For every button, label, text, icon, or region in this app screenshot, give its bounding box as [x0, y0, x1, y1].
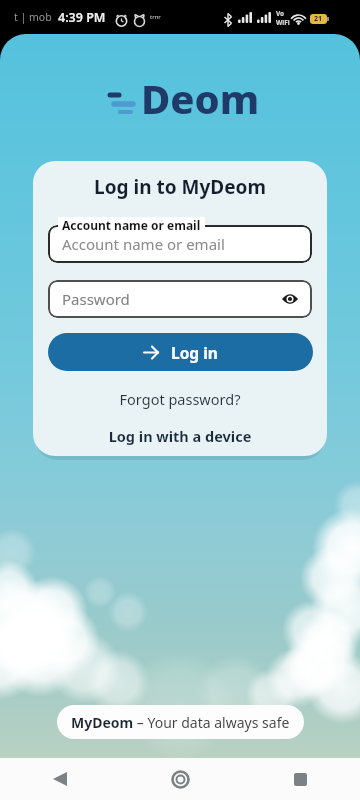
staticText: Log in: [171, 342, 218, 363]
button[interactable]: Account name or email: [48, 225, 312, 263]
staticText: Password: [62, 289, 130, 309]
button[interactable]: MyDeom – Your data always safe: [57, 705, 304, 739]
staticText: Account name or email: [62, 217, 201, 233]
button[interactable]: [120, 758, 240, 800]
staticText: Account name or email: [62, 234, 225, 254]
staticText: Vo: [276, 9, 285, 18]
button[interactable]: Log in: [48, 333, 313, 371]
staticText: trnr: [150, 13, 161, 21]
staticText: t | mob: [14, 10, 52, 24]
staticText: MyDeom – Your data always safe: [71, 713, 290, 732]
button[interactable]: [0, 758, 120, 800]
button[interactable]: Forgot password?: [33, 389, 327, 409]
staticText: 4:39 PM: [58, 9, 106, 26]
staticText: 21: [314, 14, 323, 24]
button[interactable]: [240, 758, 360, 800]
staticText: WiFi: [276, 18, 290, 27]
staticText: Deom: [141, 71, 260, 125]
button[interactable]: Log in with a device: [33, 426, 327, 446]
button[interactable]: Password: [48, 280, 312, 318]
staticText: Log in to MyDeom: [33, 174, 327, 200]
